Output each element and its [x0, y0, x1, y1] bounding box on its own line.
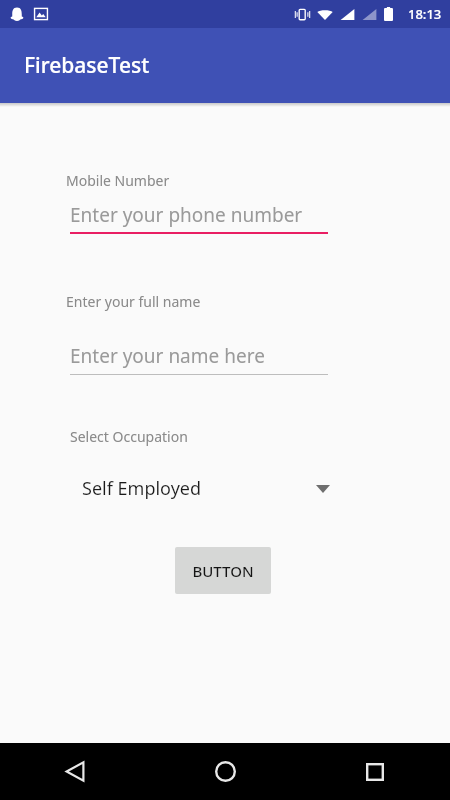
button[interactable]: Enter your phone number	[70, 202, 328, 234]
button[interactable]: Back	[0, 743, 150, 800]
staticText: FirebaseTest	[24, 51, 150, 80]
staticText: Mobile Number	[66, 171, 170, 190]
staticText: Enter your full name	[66, 292, 201, 311]
button[interactable]: BUTTON	[175, 547, 271, 594]
button[interactable]: Recent apps	[300, 743, 450, 800]
staticText: Enter your phone number	[70, 202, 303, 228]
button[interactable]: Self Employed	[82, 476, 330, 501]
button[interactable]: Enter your name here	[70, 343, 328, 375]
staticText: Select Occupation	[70, 427, 188, 446]
staticText: Enter your name here	[70, 343, 265, 369]
staticText: BUTTON	[192, 561, 254, 581]
staticText: Self Employed	[82, 476, 202, 501]
button[interactable]: Home	[150, 743, 300, 800]
staticText: 18:13	[408, 5, 442, 23]
